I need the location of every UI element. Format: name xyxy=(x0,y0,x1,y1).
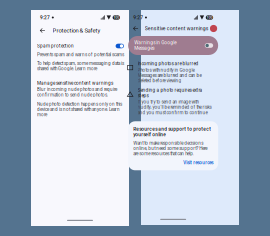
button[interactable]: Warnings in Google Messages xyxy=(124,36,222,55)
staticText: Sending a photo requires extra steps xyxy=(138,87,203,98)
staticText: Prevents spam and warns of potential sca… xyxy=(37,52,124,57)
button[interactable]: Sensitive content warnings xyxy=(141,25,209,31)
staticText: Protection & Safety xyxy=(52,27,100,34)
staticText: Resources and support to protect yoursel… xyxy=(133,126,211,137)
button[interactable]: Back xyxy=(36,25,47,35)
staticText: If you try to send an image with nudity,… xyxy=(138,99,212,115)
staticText: Manage sensitive content warnings xyxy=(37,80,113,86)
staticText: Nude photo detection happens only on thi… xyxy=(37,101,122,117)
staticText: Photos with nudity in Google Messages ar… xyxy=(138,67,202,83)
staticText: Blur incoming nude photos and require co… xyxy=(37,87,117,97)
staticText: To help detect spam, some messaging data… xyxy=(37,61,124,71)
staticText: 9:27 xyxy=(40,15,50,20)
button[interactable]: Account xyxy=(210,25,222,32)
staticText: Visit resources xyxy=(183,160,213,165)
staticText: 9:27 xyxy=(133,15,143,20)
staticText: Incoming photos are blurred xyxy=(138,61,199,66)
staticText: Spam protection xyxy=(37,43,74,49)
staticText: Want to make responsible decisions onlin… xyxy=(133,140,207,156)
button[interactable]: Resources and support to protect yoursel… xyxy=(124,121,222,170)
staticText: Warnings in Google Messages xyxy=(134,40,176,51)
staticText: 100 xyxy=(206,15,212,20)
button[interactable]: Back xyxy=(129,23,141,33)
staticText: 100 xyxy=(113,15,119,20)
button[interactable]: Protection & Safety xyxy=(47,27,100,34)
staticText: Sensitive content warnings xyxy=(145,25,209,31)
button[interactable]: Spam protection xyxy=(31,40,129,52)
